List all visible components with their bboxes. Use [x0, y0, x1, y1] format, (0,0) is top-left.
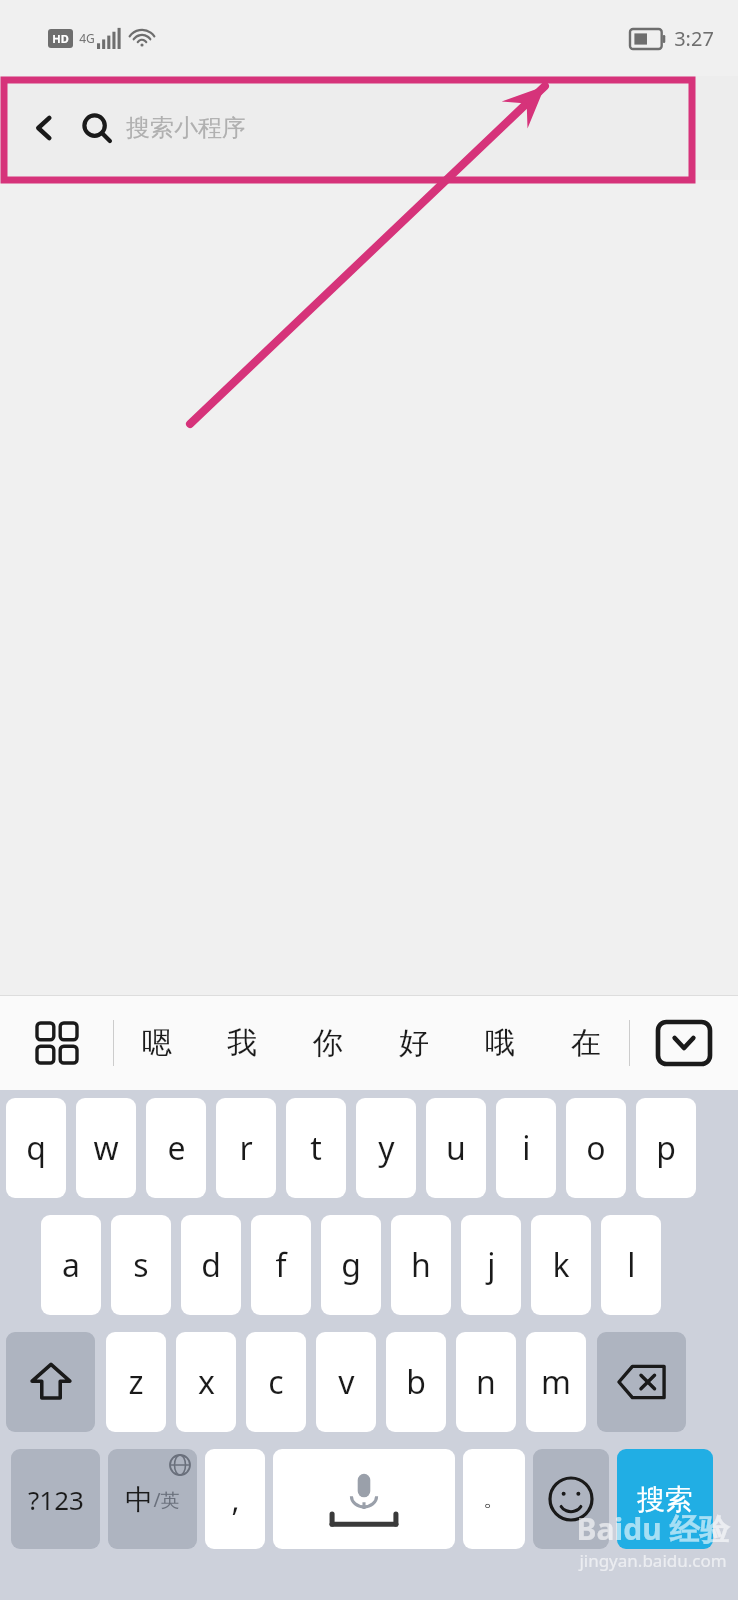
- staticText: 3:27: [674, 25, 714, 52]
- button[interactable]: e: [146, 1098, 206, 1198]
- staticText: l: [627, 1243, 636, 1287]
- staticText: /英: [153, 1487, 180, 1513]
- button[interactable]: Keyboard panel: [0, 995, 113, 1090]
- staticText: 中: [125, 1482, 153, 1517]
- staticText: HD: [52, 31, 69, 46]
- staticText: 你: [313, 1024, 343, 1062]
- button[interactable]: o: [566, 1098, 626, 1198]
- button[interactable]: q: [6, 1098, 66, 1198]
- staticText: 嗯: [142, 1024, 172, 1062]
- staticText: h: [411, 1243, 431, 1287]
- button[interactable]: n: [456, 1332, 516, 1432]
- staticText: 4G: [79, 30, 95, 46]
- staticText: r: [239, 1126, 253, 1170]
- button[interactable]: 在: [543, 995, 629, 1090]
- staticText: Baidu 经验: [576, 1508, 730, 1549]
- button[interactable]: Back: [22, 105, 68, 151]
- staticText: g: [341, 1243, 361, 1287]
- button[interactable]: Hide keyboard: [630, 995, 738, 1090]
- button[interactable]: l: [601, 1215, 661, 1315]
- staticText: b: [406, 1360, 426, 1404]
- button[interactable]: ?123: [11, 1449, 100, 1549]
- staticText: k: [552, 1243, 570, 1287]
- staticText: a: [62, 1243, 80, 1287]
- button[interactable]: g: [321, 1215, 381, 1315]
- staticText: t: [310, 1126, 322, 1170]
- staticText: 搜索小程序: [126, 113, 246, 143]
- button[interactable]: m: [526, 1332, 586, 1432]
- button[interactable]: x: [176, 1332, 236, 1432]
- staticText: n: [476, 1360, 496, 1404]
- button[interactable]: b: [386, 1332, 446, 1432]
- staticText: 。: [483, 1485, 505, 1513]
- button[interactable]: 好: [371, 995, 457, 1090]
- button[interactable]: Back: [0, 76, 738, 180]
- staticText: ,: [231, 1479, 240, 1520]
- staticText: f: [275, 1243, 287, 1287]
- staticText: j: [487, 1243, 496, 1287]
- staticText: v: [338, 1360, 355, 1404]
- button[interactable]: h: [391, 1215, 451, 1315]
- button[interactable]: 哦: [457, 995, 543, 1090]
- button[interactable]: f: [251, 1215, 311, 1315]
- button[interactable]: s: [111, 1215, 171, 1315]
- button[interactable]: 你: [285, 995, 371, 1090]
- staticText: z: [128, 1360, 144, 1404]
- staticText: q: [26, 1126, 46, 1170]
- staticText: y: [378, 1126, 395, 1170]
- staticText: i: [522, 1126, 531, 1170]
- button[interactable]: k: [531, 1215, 591, 1315]
- staticText: s: [133, 1243, 149, 1287]
- staticText: c: [268, 1360, 284, 1404]
- staticText: p: [656, 1126, 676, 1170]
- button[interactable]: Shift: [6, 1332, 95, 1432]
- staticText: u: [446, 1126, 466, 1170]
- staticText: 我: [227, 1024, 257, 1062]
- staticText: 在: [571, 1024, 601, 1062]
- button[interactable]: ,: [205, 1449, 265, 1549]
- button[interactable]: j: [461, 1215, 521, 1315]
- button[interactable]: 。: [463, 1449, 525, 1549]
- button[interactable]: d: [181, 1215, 241, 1315]
- staticText: w: [93, 1126, 119, 1170]
- staticText: d: [201, 1243, 221, 1287]
- button[interactable]: u: [426, 1098, 486, 1198]
- staticText: x: [198, 1360, 215, 1404]
- button[interactable]: Backspace: [597, 1332, 686, 1432]
- button[interactable]: v: [316, 1332, 376, 1432]
- staticText: 搜索: [637, 1482, 693, 1517]
- button[interactable]: 我: [199, 995, 285, 1090]
- staticText: o: [586, 1126, 606, 1170]
- button[interactable]: p: [636, 1098, 696, 1198]
- button[interactable]: c: [246, 1332, 306, 1432]
- button[interactable]: i: [496, 1098, 556, 1198]
- staticText: e: [167, 1126, 186, 1170]
- button[interactable]: w: [76, 1098, 136, 1198]
- staticText: 好: [399, 1024, 429, 1062]
- button[interactable]: 嗯: [114, 995, 199, 1090]
- button[interactable]: a: [41, 1215, 101, 1315]
- button[interactable]: Emoji: [533, 1449, 609, 1549]
- button[interactable]: 中: [108, 1449, 197, 1549]
- staticText: jingyan.baidu.com: [579, 1549, 727, 1572]
- staticText: ?123: [28, 1482, 84, 1517]
- button[interactable]: z: [106, 1332, 166, 1432]
- button[interactable]: r: [216, 1098, 276, 1198]
- staticText: 哦: [485, 1024, 515, 1062]
- button[interactable]: y: [356, 1098, 416, 1198]
- button[interactable]: 搜索: [617, 1449, 713, 1549]
- staticText: m: [541, 1360, 571, 1404]
- button[interactable]: Space: [273, 1449, 455, 1549]
- button[interactable]: t: [286, 1098, 346, 1198]
